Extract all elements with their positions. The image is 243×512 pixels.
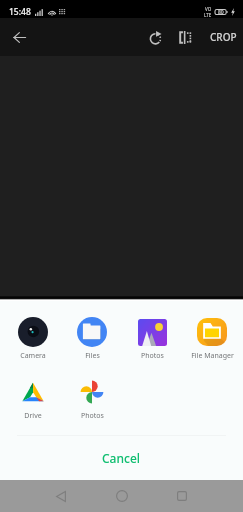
button[interactable]: Photos — [122, 317, 182, 361]
staticText: Photos — [81, 411, 104, 421]
button[interactable]: Back — [48, 483, 74, 509]
button[interactable]: Drive — [3, 377, 62, 421]
button[interactable]: Recents — [169, 483, 195, 509]
staticText: VO — [205, 6, 212, 12]
button[interactable]: Rotate — [142, 24, 169, 51]
button[interactable]: Files — [62, 317, 122, 361]
staticText: Cancel — [102, 450, 141, 466]
staticText: Photos — [141, 351, 164, 361]
staticText: LTE — [204, 12, 212, 18]
staticText: 15:48 — [9, 6, 31, 18]
button[interactable]: Home — [109, 483, 135, 509]
button[interactable]: File Manager — [182, 317, 242, 361]
button[interactable]: Flip — [171, 24, 198, 51]
staticText: CROP — [210, 30, 237, 44]
button[interactable]: Back — [6, 24, 33, 51]
staticText: Drive — [24, 411, 42, 421]
staticText: File Manager — [191, 351, 234, 361]
button[interactable]: Cancel — [0, 436, 243, 480]
staticText: Camera — [20, 351, 46, 361]
button[interactable]: CROP — [198, 23, 243, 51]
staticText: 80 — [218, 9, 224, 16]
staticText: Files — [85, 351, 100, 361]
button[interactable]: Photos — [62, 377, 122, 421]
button[interactable]: Camera — [3, 317, 62, 361]
